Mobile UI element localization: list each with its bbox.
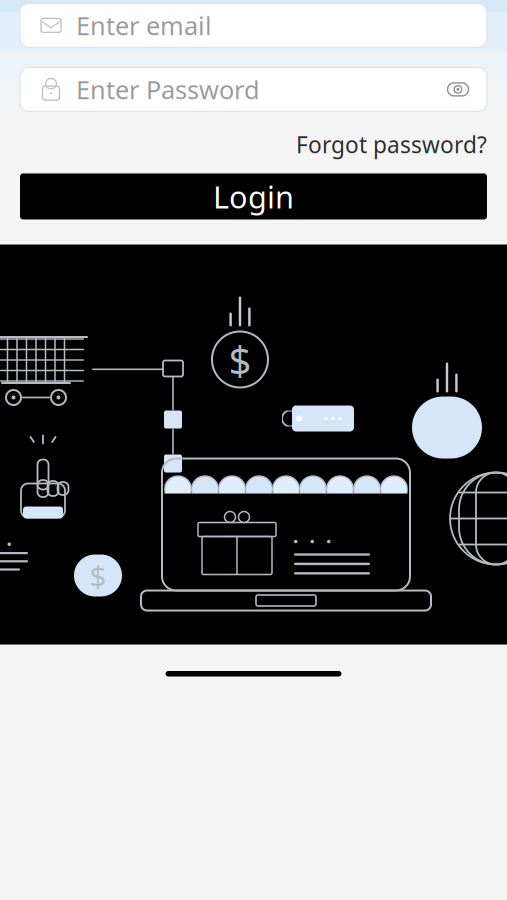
staticText: $ — [89, 556, 106, 595]
staticText: Login — [213, 176, 294, 217]
staticText: $ — [228, 333, 251, 386]
button[interactable]: Enter Password — [20, 67, 487, 111]
staticText: Enter Password — [76, 73, 260, 106]
button[interactable]: Don't have an account? — [84, 233, 423, 280]
staticText: Enter email — [76, 9, 212, 42]
staticText: Don't have an account? — [84, 241, 334, 272]
button[interactable]: Login — [20, 173, 487, 219]
button[interactable]: Forgot password? — [296, 123, 487, 165]
staticText: Sign Up — [340, 241, 423, 272]
staticText: Forgot password? — [296, 129, 487, 159]
